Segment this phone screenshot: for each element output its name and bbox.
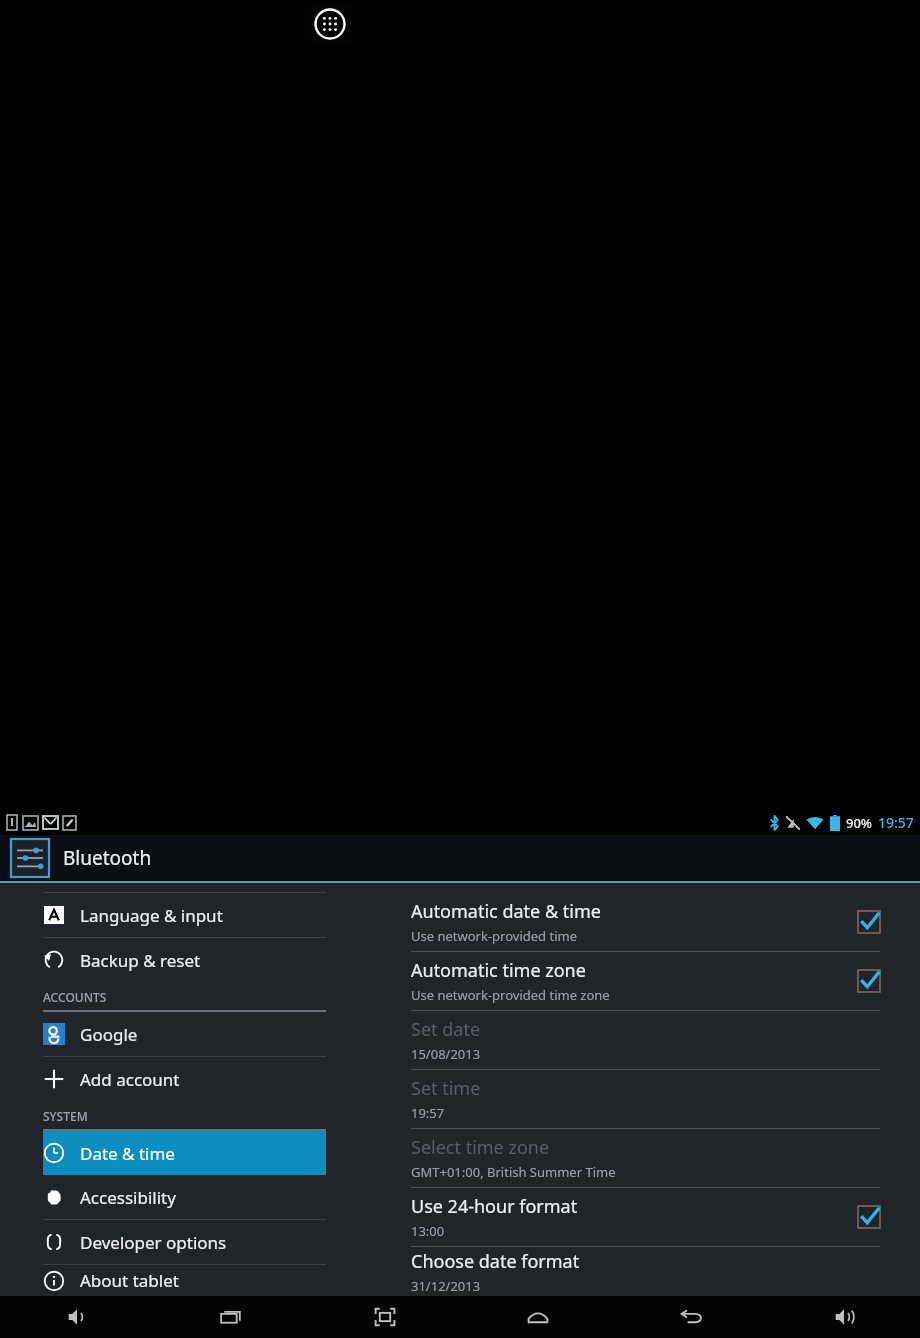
staticText: 19:57 xyxy=(411,1104,445,1122)
button[interactable]: Google xyxy=(43,1012,326,1056)
staticText: Use network-provided time xyxy=(411,927,577,945)
staticText: SYSTEM xyxy=(43,1108,88,1124)
button[interactable]: Checkbox xyxy=(858,1206,880,1228)
button[interactable]: Screenshot xyxy=(308,1296,461,1338)
staticText: 15/08/2013 xyxy=(411,1045,481,1063)
button[interactable]: Select time zone xyxy=(411,1129,880,1187)
button[interactable]: Developer options xyxy=(43,1220,326,1264)
button[interactable]: Automatic time zone xyxy=(411,952,880,1010)
staticText: Add account xyxy=(80,1068,180,1091)
staticText: Bluetooth xyxy=(63,845,152,871)
button[interactable]: Language & input xyxy=(43,893,326,937)
staticText: Google xyxy=(80,1023,138,1046)
staticText: Choose date format xyxy=(411,1249,580,1274)
staticText: Set time xyxy=(411,1076,481,1101)
button[interactable]: Apps xyxy=(308,2,352,46)
staticText: Automatic date & time xyxy=(411,899,601,924)
staticText: Accessibility xyxy=(80,1186,176,1209)
staticText: Automatic time zone xyxy=(411,958,586,983)
button[interactable]: Use 24-hour format xyxy=(411,1188,880,1246)
button[interactable]: Automatic date & time xyxy=(411,893,880,951)
staticText: Use 24-hour format xyxy=(411,1194,578,1219)
staticText: Date & time xyxy=(80,1142,175,1165)
button[interactable]: Choose date format xyxy=(411,1247,880,1296)
staticText: 13:00 xyxy=(411,1222,445,1240)
button[interactable]: Checkbox xyxy=(858,911,880,933)
staticText: Use network-provided time zone xyxy=(411,986,610,1004)
button[interactable]: Backup & reset xyxy=(43,938,326,982)
button[interactable]: Set time xyxy=(411,1070,880,1128)
staticText: 90% xyxy=(846,814,872,832)
button[interactable]: Bluetooth xyxy=(0,835,920,880)
button[interactable]: Home xyxy=(461,1296,614,1338)
staticText: 31/12/2013 xyxy=(411,1277,481,1295)
staticText: Backup & reset xyxy=(80,949,201,972)
staticText: Language & input xyxy=(80,904,223,927)
button[interactable]: Volume up xyxy=(767,1296,920,1338)
button[interactable]: Set date xyxy=(411,1011,880,1069)
button[interactable]: About tablet xyxy=(43,1265,326,1296)
button[interactable]: Volume down xyxy=(0,1296,154,1338)
button[interactable]: Date & time xyxy=(43,1131,326,1175)
staticText: Developer options xyxy=(80,1231,227,1254)
staticText: Select time zone xyxy=(411,1135,550,1160)
staticText: ACCOUNTS xyxy=(43,989,107,1005)
button[interactable]: Back xyxy=(614,1296,767,1338)
button[interactable]: Checkbox xyxy=(858,970,880,992)
staticText: Set date xyxy=(411,1017,481,1042)
staticText: GMT+01:00, British Summer Time xyxy=(411,1163,616,1181)
button[interactable]: Recents xyxy=(154,1296,308,1338)
staticText: 19:57 xyxy=(878,813,914,832)
button[interactable]: Accessibility xyxy=(43,1175,326,1219)
staticText: About tablet xyxy=(80,1269,179,1292)
button[interactable]: Add account xyxy=(43,1057,326,1101)
